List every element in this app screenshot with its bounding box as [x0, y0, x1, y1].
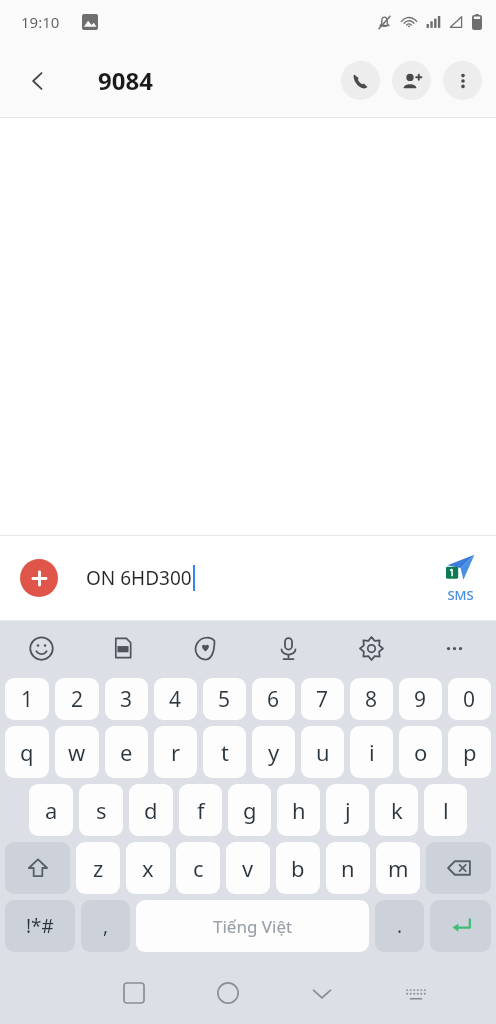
button[interactable]: u: [301, 726, 344, 778]
staticText: 19:10: [21, 12, 60, 32]
staticText: o: [414, 737, 428, 767]
staticText: 6: [267, 685, 280, 714]
button[interactable]: Voice input: [247, 621, 330, 675]
staticText: e: [120, 737, 133, 767]
staticText: t: [221, 737, 229, 767]
button[interactable]: Home: [181, 961, 275, 1024]
staticText: d: [144, 795, 158, 825]
staticText: Tiếng Việt: [213, 915, 293, 938]
button[interactable]: ON 6HD300: [86, 553, 424, 603]
staticText: r: [171, 737, 181, 767]
button[interactable]: Back: [14, 57, 62, 105]
button[interactable]: o: [399, 726, 442, 778]
button[interactable]: .: [375, 900, 424, 952]
button[interactable]: Tiếng Việt: [136, 900, 369, 952]
button[interactable]: v: [226, 842, 270, 894]
button[interactable]: n: [326, 842, 370, 894]
staticText: u: [316, 737, 330, 767]
button[interactable]: f: [179, 784, 222, 836]
button[interactable]: c: [176, 842, 220, 894]
button[interactable]: x: [126, 842, 170, 894]
button[interactable]: s: [79, 784, 123, 836]
button[interactable]: Stickers: [164, 621, 247, 675]
button[interactable]: q: [5, 726, 49, 778]
staticText: x: [142, 853, 154, 883]
button[interactable]: a: [29, 784, 73, 836]
button[interactable]: k: [375, 784, 418, 836]
button[interactable]: 1: [5, 678, 49, 720]
button[interactable]: Enter: [430, 900, 491, 952]
staticText: 9: [414, 685, 427, 714]
button[interactable]: 3: [105, 678, 148, 720]
button[interactable]: t: [203, 726, 246, 778]
button[interactable]: Hide keyboard: [275, 961, 369, 1024]
staticText: j: [345, 795, 351, 825]
staticText: .: [397, 913, 403, 939]
button[interactable]: Backspace: [426, 842, 491, 894]
button[interactable]: g: [228, 784, 271, 836]
button[interactable]: p: [448, 726, 491, 778]
button[interactable]: Add attachment: [20, 559, 58, 597]
button[interactable]: m: [376, 842, 420, 894]
button[interactable]: Keyboard settings: [330, 621, 413, 675]
button[interactable]: 7: [301, 678, 344, 720]
button[interactable]: z: [76, 842, 120, 894]
staticText: i: [369, 737, 375, 767]
button[interactable]: Shift: [5, 842, 70, 894]
staticText: y: [268, 737, 280, 767]
button[interactable]: Change keyboard: [369, 961, 463, 1024]
staticText: q: [20, 737, 34, 767]
staticText: ,: [103, 913, 109, 939]
button[interactable]: More options: [443, 61, 482, 100]
staticText: 0: [463, 685, 476, 714]
button[interactable]: l: [424, 784, 467, 836]
button[interactable]: Call: [341, 61, 380, 100]
staticText: p: [463, 737, 477, 767]
staticText: 4: [169, 685, 182, 714]
button[interactable]: 8: [350, 678, 393, 720]
staticText: v: [242, 853, 254, 883]
button[interactable]: Emoji: [0, 621, 82, 675]
button[interactable]: More: [413, 621, 496, 675]
staticText: a: [45, 795, 58, 825]
button[interactable]: 0: [448, 678, 491, 720]
staticText: ON 6HD300: [86, 565, 192, 591]
staticText: s: [96, 795, 107, 825]
button[interactable]: i: [350, 726, 393, 778]
button[interactable]: 6: [252, 678, 295, 720]
staticText: c: [193, 853, 204, 883]
staticText: SMS: [447, 586, 474, 604]
staticText: g: [243, 795, 257, 825]
button[interactable]: j: [326, 784, 369, 836]
staticText: m: [388, 853, 409, 883]
staticText: 2: [71, 685, 84, 714]
button[interactable]: y: [252, 726, 295, 778]
staticText: 5: [218, 685, 231, 714]
staticText: 9084: [98, 64, 153, 97]
button[interactable]: d: [129, 784, 173, 836]
staticText: 1: [21, 685, 34, 714]
staticText: 3: [120, 685, 133, 714]
staticText: !*#: [26, 913, 54, 939]
button[interactable]: ,: [81, 900, 130, 952]
staticText: k: [391, 795, 403, 825]
staticText: z: [93, 853, 104, 883]
staticText: f: [197, 795, 205, 825]
button[interactable]: 2: [55, 678, 99, 720]
button[interactable]: GIF: [82, 621, 164, 675]
staticText: 8: [365, 685, 378, 714]
button[interactable]: Send SMS: [424, 553, 496, 604]
button[interactable]: h: [277, 784, 320, 836]
button[interactable]: 9: [399, 678, 442, 720]
button[interactable]: w: [55, 726, 99, 778]
button[interactable]: b: [276, 842, 320, 894]
button[interactable]: 4: [154, 678, 197, 720]
button[interactable]: 5: [203, 678, 246, 720]
staticText: n: [341, 853, 355, 883]
button[interactable]: Recent apps: [86, 961, 181, 1024]
staticText: h: [292, 795, 306, 825]
button[interactable]: e: [105, 726, 148, 778]
button[interactable]: !*#: [5, 900, 75, 952]
button[interactable]: r: [154, 726, 197, 778]
button[interactable]: Add contact: [392, 61, 431, 100]
